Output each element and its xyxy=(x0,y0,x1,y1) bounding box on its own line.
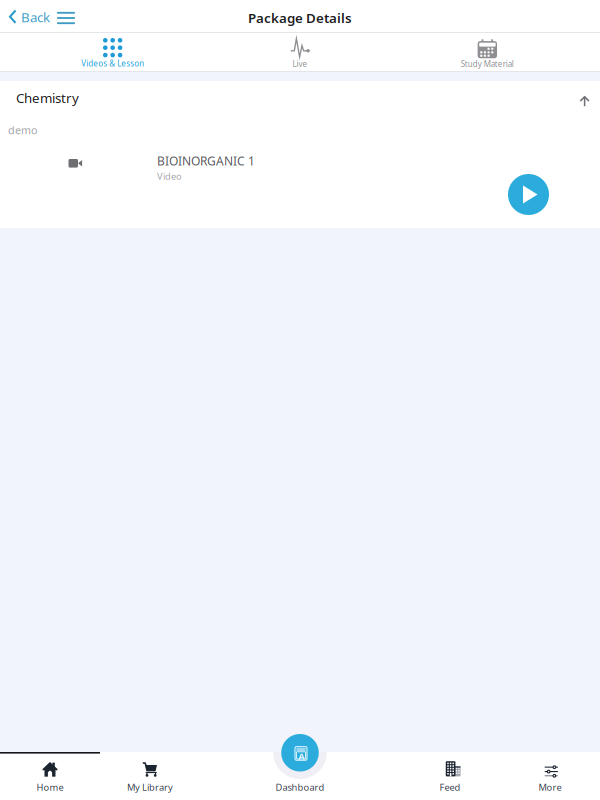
staticText: My Library xyxy=(127,781,173,793)
staticText: Video xyxy=(157,170,182,182)
staticText: Study Material xyxy=(461,59,514,69)
staticText: Feed xyxy=(439,781,460,793)
button[interactable]: Chemistry xyxy=(0,81,600,121)
staticText: Chemistry xyxy=(16,89,79,107)
staticText: Home xyxy=(36,781,63,793)
button[interactable]: My Library xyxy=(100,752,200,800)
button[interactable]: Videos & Lesson xyxy=(19,33,206,70)
staticText: Back xyxy=(21,8,50,26)
button[interactable]: BIOINORGANIC 1 xyxy=(0,143,600,217)
button[interactable]: More xyxy=(500,752,600,800)
staticText: Live xyxy=(292,59,307,69)
button[interactable]: A xyxy=(200,752,400,800)
staticText: Dashboard xyxy=(275,781,324,793)
staticText: More xyxy=(538,781,561,793)
staticText: Package Details xyxy=(248,9,352,27)
staticText: demo xyxy=(8,123,37,137)
button[interactable]: Live xyxy=(206,33,394,70)
staticText: BIOINORGANIC 1 xyxy=(157,153,255,169)
button[interactable]: Back xyxy=(0,4,54,30)
button[interactable]: Study Material xyxy=(394,33,581,70)
button[interactable]: Home xyxy=(0,752,100,800)
staticText: A xyxy=(298,750,304,762)
button[interactable]: Feed xyxy=(400,752,500,800)
button[interactable]: Menu xyxy=(52,5,80,31)
staticText: Videos & Lesson xyxy=(81,58,144,69)
